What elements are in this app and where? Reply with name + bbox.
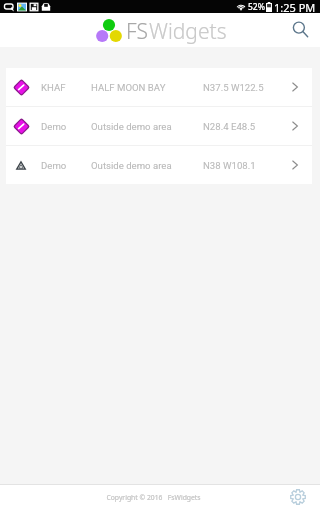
- button[interactable]: KHAF: [6, 68, 312, 106]
- button[interactable]: Settings: [287, 486, 309, 508]
- staticText: HALF MOON BAY: [91, 82, 203, 93]
- staticText: Widgets: [149, 17, 227, 46]
- staticText: Demo: [41, 121, 91, 132]
- staticText: 1:25 PM: [274, 0, 316, 13]
- button[interactable]: Demo: [6, 146, 312, 184]
- staticText: Copyright © 2016 FsWidgets: [106, 493, 201, 502]
- staticText: N38 W108.1: [203, 160, 256, 171]
- staticText: Demo: [41, 160, 91, 171]
- staticText: 52%: [248, 1, 265, 13]
- staticText: Outside demo area: [91, 160, 203, 171]
- staticText: KHAF: [41, 82, 91, 93]
- button[interactable]: Demo: [6, 107, 312, 145]
- staticText: N37.5 W122.5: [203, 82, 264, 93]
- staticText: FS: [126, 17, 149, 46]
- button[interactable]: Search: [286, 16, 314, 44]
- staticText: Outside demo area: [91, 121, 203, 132]
- staticText: N28.4 E48.5: [203, 121, 256, 132]
